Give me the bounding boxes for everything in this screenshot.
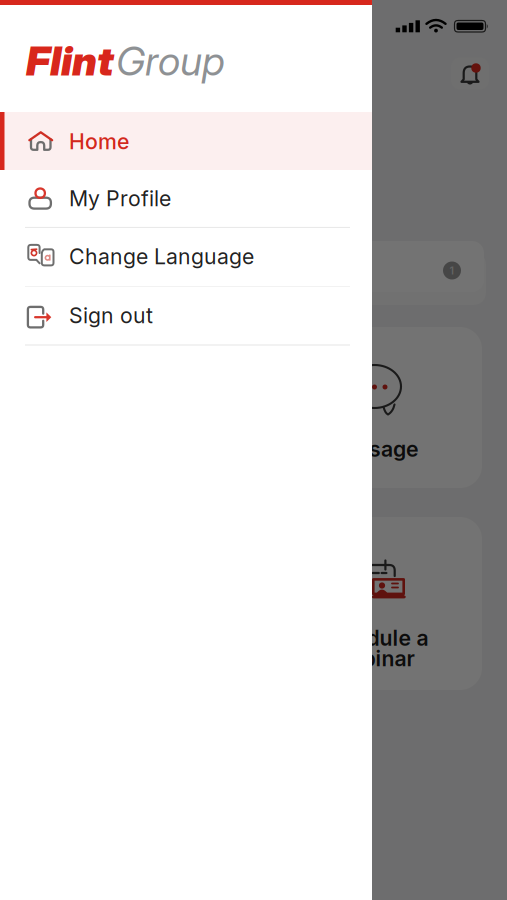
staticText: My Profile	[69, 186, 171, 211]
button[interactable]: Search	[24, 241, 484, 292]
staticText: Schedule a	[314, 625, 428, 651]
button[interactable]: My Profile	[0, 170, 372, 227]
button[interactable]: Notifications	[451, 57, 489, 89]
staticText: Webinar	[328, 646, 414, 671]
button[interactable]: Sign out	[0, 287, 372, 345]
staticText: Change Language	[69, 244, 254, 269]
button[interactable]: Message	[261, 327, 482, 488]
staticText: Home	[69, 129, 129, 154]
staticText: 1	[449, 264, 454, 277]
button[interactable]: Schedule a	[261, 517, 482, 690]
staticText: Group	[116, 37, 225, 85]
button[interactable]: Home	[0, 112, 372, 170]
staticText: Message	[324, 436, 419, 462]
button[interactable]: Change Language	[0, 228, 372, 287]
staticText: Sign out	[69, 303, 153, 328]
staticText: Flint	[26, 37, 114, 85]
